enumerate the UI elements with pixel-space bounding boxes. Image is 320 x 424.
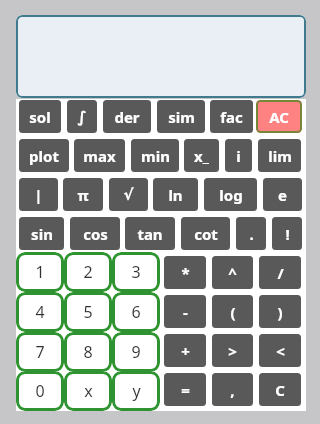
button[interactable]: = [164, 373, 206, 406]
staticText: 1 [35, 261, 45, 283]
staticText: , [230, 380, 235, 400]
staticText: tan [137, 224, 163, 244]
button[interactable]: fac [210, 100, 253, 133]
button[interactable]: + [164, 334, 206, 367]
staticText: plot [29, 146, 59, 166]
button[interactable]: √ [109, 178, 148, 211]
staticText: cos [83, 224, 108, 244]
staticText: + [181, 341, 190, 361]
button[interactable]: 6 [112, 292, 160, 332]
staticText: 6 [131, 301, 141, 323]
staticText: ^ [228, 263, 237, 283]
button[interactable]: sol [19, 100, 61, 133]
staticText: ln [168, 185, 183, 205]
button[interactable]: ! [272, 217, 302, 250]
button[interactable]: ∫ [67, 100, 97, 133]
staticText: = [181, 380, 190, 400]
staticText: log [219, 185, 243, 205]
staticText: x_ [194, 146, 209, 166]
button[interactable]: 0 [16, 371, 64, 411]
staticText: - [183, 302, 188, 322]
staticText: ∫ [77, 108, 87, 125]
staticText: min [141, 146, 170, 166]
staticText: i [236, 146, 241, 166]
staticText: max [83, 146, 116, 166]
staticText: 0 [35, 380, 45, 402]
button[interactable]: 5 [64, 292, 112, 332]
staticText: * [181, 263, 190, 283]
button[interactable]: i [225, 139, 252, 172]
staticText: fac [220, 107, 243, 127]
button[interactable]: , [212, 373, 253, 406]
staticText: lim [268, 146, 292, 166]
button[interactable]: 3 [112, 252, 160, 292]
staticText: sim [168, 107, 195, 127]
staticText: ! [285, 224, 290, 244]
button[interactable]: cot [181, 217, 230, 250]
staticText: C [275, 380, 285, 400]
button[interactable]: ^ [212, 256, 253, 289]
staticText: 4 [35, 301, 45, 323]
staticText: ) [277, 302, 283, 322]
button[interactable]: plot [19, 139, 69, 172]
button[interactable]: 2 [64, 252, 112, 292]
button[interactable]: 7 [16, 332, 64, 372]
button[interactable]: 1 [16, 252, 64, 292]
button[interactable]: 8 [64, 332, 112, 372]
button[interactable]: ln [153, 178, 198, 211]
button[interactable]: e [263, 178, 302, 211]
staticText: . [249, 224, 254, 244]
button[interactable] [16, 15, 306, 98]
staticText: π [77, 185, 89, 205]
button[interactable]: ( [212, 295, 253, 328]
button[interactable]: y [112, 371, 160, 411]
staticText: der [114, 107, 140, 127]
button[interactable]: / [259, 256, 301, 289]
staticText: 3 [131, 261, 141, 283]
button[interactable]: min [131, 139, 179, 172]
button[interactable]: cos [70, 217, 120, 250]
button[interactable]: ) [259, 295, 301, 328]
staticText: y [132, 380, 141, 402]
button[interactable]: x_ [184, 139, 219, 172]
button[interactable]: lim [258, 139, 301, 172]
staticText: e [278, 185, 287, 205]
button[interactable]: - [164, 295, 206, 328]
staticText: √ [123, 186, 134, 203]
button[interactable]: | [19, 178, 58, 211]
button[interactable]: tan [125, 217, 175, 250]
button[interactable]: log [204, 178, 257, 211]
button[interactable]: x [64, 371, 112, 411]
staticText: AC [269, 107, 289, 127]
staticText: | [34, 185, 43, 205]
button[interactable]: 4 [16, 292, 64, 332]
button[interactable]: . [236, 217, 266, 250]
staticText: < [276, 341, 285, 361]
button[interactable]: π [63, 178, 103, 211]
staticText: sol [29, 107, 51, 127]
staticText: 8 [83, 341, 93, 363]
staticText: sin [31, 224, 53, 244]
staticText: ( [230, 302, 236, 322]
button[interactable]: C [259, 373, 301, 406]
button[interactable]: < [259, 334, 301, 367]
staticText: > [228, 341, 237, 361]
button[interactable]: AC [256, 100, 302, 133]
button[interactable]: 9 [112, 332, 160, 372]
staticText: cot [194, 224, 218, 244]
button[interactable]: max [74, 139, 125, 172]
button[interactable]: sim [157, 100, 205, 133]
staticText: 2 [83, 261, 93, 283]
staticText: 7 [35, 341, 45, 363]
button[interactable]: der [103, 100, 151, 133]
staticText: 5 [83, 301, 93, 323]
staticText: 9 [131, 341, 141, 363]
button[interactable]: > [212, 334, 253, 367]
staticText: x [84, 380, 93, 402]
button[interactable]: sin [19, 217, 64, 250]
button[interactable]: * [164, 256, 206, 289]
staticText: / [277, 263, 284, 283]
